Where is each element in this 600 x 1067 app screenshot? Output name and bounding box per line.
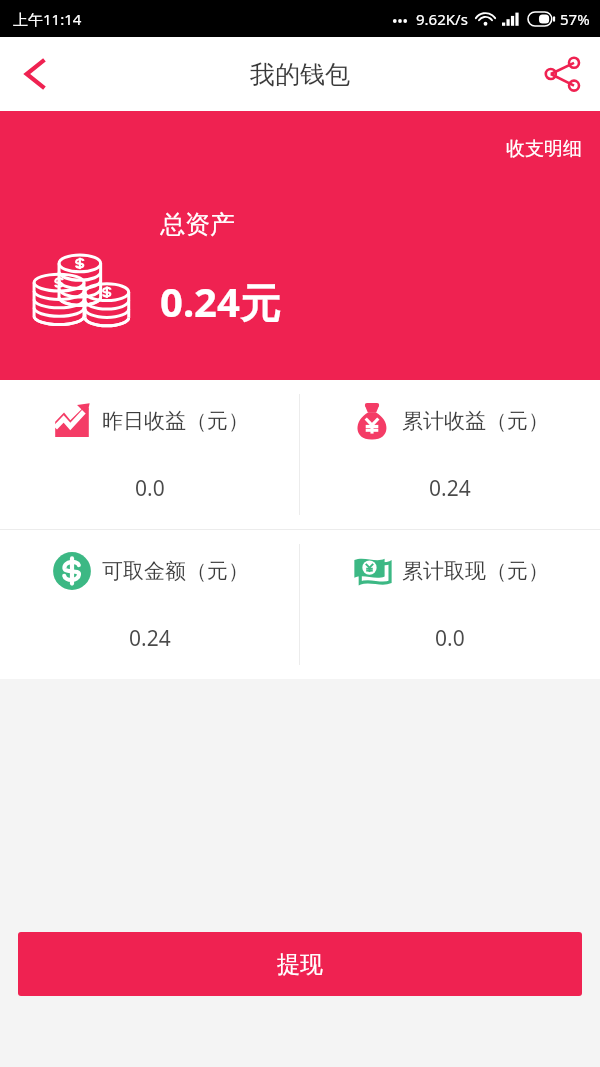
staticText: 累计收益（元） [402,408,549,434]
staticText: 我的钱包 [250,59,350,90]
staticText: 0.24 [129,624,171,653]
button[interactable]: 收支明细 [502,133,586,165]
staticText: 9.62K/s [416,9,468,29]
staticText: 累计取现（元） [402,558,549,584]
staticText: 总资产 [160,209,235,240]
staticText: 提现 [277,950,323,979]
staticText: 0.24元 [160,274,280,329]
staticText: 昨日收益（元） [102,408,249,434]
staticText: 0.0 [435,624,465,653]
staticText: 收支明细 [506,137,582,161]
button[interactable]: 累计收益（元） [300,380,600,529]
button[interactable]: 返回 [0,37,70,111]
button[interactable]: 累计取现（元） [300,530,600,679]
button[interactable]: 昨日收益（元） [0,380,299,529]
button[interactable]: 提现 [18,932,582,996]
button[interactable]: 分享 [524,37,600,111]
staticText: 0.24 [429,474,471,503]
staticText: 0.0 [135,474,165,503]
staticText: 上午11:14 [13,9,82,29]
button[interactable]: 可取金额（元） [0,530,299,679]
staticText: 可取金额（元） [102,558,249,584]
staticText: 57% [560,9,590,29]
